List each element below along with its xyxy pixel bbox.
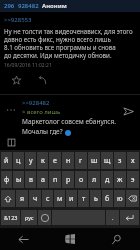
staticText: н <box>66 156 71 166</box>
button[interactable]: рус <box>21 210 37 225</box>
button[interactable]: >>928553 <box>0 15 36 25</box>
button[interactable]: ь <box>90 190 101 207</box>
button[interactable]: Shift <box>1 190 15 207</box>
staticText: . <box>112 214 114 221</box>
button[interactable]: ф <box>1 171 12 188</box>
staticText: Маркетолог совсем ебанулся. <box>22 117 116 126</box>
button[interactable]: ш <box>88 152 100 169</box>
button[interactable]: н <box>62 152 74 169</box>
button[interactable]: б <box>102 190 113 207</box>
button[interactable]: ы <box>13 171 24 188</box>
staticText: м <box>57 194 63 204</box>
staticText: > всего лишь <box>22 108 61 116</box>
staticText: я <box>20 194 25 204</box>
button[interactable]: &123 <box>1 210 20 225</box>
button[interactable]: 296 <box>0 0 140 12</box>
staticText: т <box>82 194 86 204</box>
staticText: л <box>92 175 97 185</box>
staticText: х <box>131 156 135 166</box>
staticText: к <box>41 156 45 166</box>
button[interactable]: ю <box>114 190 125 207</box>
button[interactable]: х <box>127 152 139 169</box>
button[interactable]: Backspace <box>126 190 139 207</box>
button[interactable]: м <box>54 190 65 207</box>
staticText: о <box>79 175 84 185</box>
staticText: ь <box>94 194 98 204</box>
staticText: Ну не толсти так видеоченависх, для этог… <box>4 27 136 35</box>
staticText: ф <box>4 175 10 185</box>
staticText: а <box>41 175 45 185</box>
button[interactable]: п <box>49 171 61 188</box>
staticText: с <box>46 194 50 204</box>
button[interactable]: Favorite <box>8 72 24 88</box>
staticText: до десятки. Иди методичку обнови. <box>4 51 112 59</box>
button[interactable]: Start <box>46 228 93 250</box>
staticText: з <box>118 156 122 166</box>
button[interactable]: э <box>127 171 139 188</box>
staticText: 296 <box>4 2 15 10</box>
staticText: е <box>53 156 57 166</box>
staticText: ч <box>33 194 38 204</box>
button[interactable]: с <box>42 190 53 207</box>
staticText: ю <box>117 194 123 204</box>
staticText: п <box>53 175 58 185</box>
button[interactable]: и <box>66 190 77 207</box>
staticText: рус <box>25 214 34 221</box>
button[interactable]: Send <box>116 99 140 123</box>
button[interactable]: я <box>16 190 28 207</box>
button[interactable]: к <box>37 152 48 169</box>
staticText: ц <box>16 156 21 166</box>
staticText: >>928482 <box>22 99 50 107</box>
staticText: д <box>105 175 110 185</box>
staticText: давно есть фикс, нужно всего лишь откати… <box>4 35 136 43</box>
staticText: 16/09/2016 11:02:21 <box>4 62 52 69</box>
button[interactable]: Reply <box>34 72 50 88</box>
button[interactable]: Enter <box>120 210 139 225</box>
staticText: у <box>29 156 33 166</box>
staticText: 928482 <box>18 2 39 10</box>
staticText: Мочалы где? <box>22 127 63 136</box>
button[interactable]: Back <box>0 228 46 250</box>
staticText: р <box>66 175 71 185</box>
staticText: г <box>79 156 83 166</box>
button[interactable]: й <box>1 152 12 169</box>
staticText: Аноним <box>42 2 67 10</box>
button[interactable]: в <box>25 171 36 188</box>
button[interactable]: . <box>106 210 119 225</box>
button[interactable]: More options <box>0 99 22 121</box>
staticText: э <box>131 175 135 185</box>
button[interactable]: Search <box>93 228 140 250</box>
staticText: и <box>69 194 74 204</box>
button[interactable]: Attach image <box>4 136 18 148</box>
button[interactable]: щ <box>101 152 113 169</box>
staticText: щ <box>104 156 111 166</box>
button[interactable]: з <box>114 152 126 169</box>
button[interactable]: ц <box>13 152 24 169</box>
staticText: &123 <box>4 214 18 221</box>
button[interactable]: т <box>78 190 89 207</box>
staticText: б <box>105 194 110 204</box>
button[interactable]: о <box>75 171 87 188</box>
button[interactable]: г <box>75 152 87 169</box>
staticText: ж <box>117 175 123 185</box>
button[interactable]: л <box>88 171 100 188</box>
button[interactable]: ч <box>29 190 41 207</box>
button[interactable]: д <box>101 171 113 188</box>
button[interactable]: Emoji <box>38 210 51 225</box>
staticText: ш <box>91 156 98 166</box>
staticText: й <box>4 156 9 166</box>
button[interactable]: е <box>49 152 61 169</box>
staticText: >>928553 <box>4 16 32 24</box>
button[interactable]: а <box>37 171 48 188</box>
button[interactable]: у <box>25 152 36 169</box>
staticText: ы <box>16 175 22 185</box>
staticText: в <box>29 175 33 185</box>
button[interactable]: ж <box>114 171 126 188</box>
staticText: 8.1 обновить все программы и снова обнов… <box>4 43 136 51</box>
button[interactable]: р <box>62 171 74 188</box>
